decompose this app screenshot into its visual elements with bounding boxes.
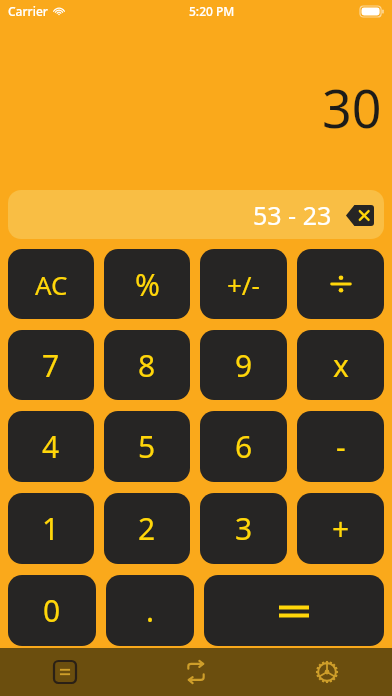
- button[interactable]: 3: [200, 493, 287, 564]
- staticText: 3: [235, 508, 253, 549]
- staticText: 4: [42, 426, 60, 467]
- staticText: -: [336, 426, 346, 467]
- button[interactable]: 0: [8, 575, 96, 646]
- staticText: 6: [235, 426, 253, 467]
- staticText: %: [135, 264, 160, 305]
- button[interactable]: .: [106, 575, 194, 646]
- staticText: 1: [42, 508, 60, 549]
- staticText: 53 - 23: [253, 198, 332, 232]
- button[interactable]: 53 - 23: [8, 190, 384, 239]
- button[interactable]: Memo: [0, 648, 130, 696]
- staticText: 5: [138, 426, 156, 467]
- staticText: 9: [235, 345, 253, 386]
- staticText: 7: [42, 345, 60, 386]
- button[interactable]: 4: [8, 411, 94, 482]
- staticText: 30: [322, 72, 382, 143]
- button[interactable]: 1: [8, 493, 94, 564]
- button[interactable]: Convert: [130, 648, 261, 696]
- staticText: 8: [138, 345, 156, 386]
- button[interactable]: x: [297, 330, 384, 400]
- button[interactable]: -: [297, 411, 384, 482]
- button[interactable]: [297, 249, 384, 319]
- staticText: 2: [138, 508, 156, 549]
- button[interactable]: [204, 575, 384, 646]
- staticText: +/-: [227, 267, 260, 302]
- button[interactable]: +: [297, 493, 384, 564]
- button[interactable]: 9: [200, 330, 287, 400]
- staticText: Carrier: [8, 3, 48, 19]
- button[interactable]: 2: [104, 493, 190, 564]
- staticText: 5:20 PM: [189, 3, 235, 19]
- button[interactable]: 7: [8, 330, 94, 400]
- button[interactable]: Backspace: [346, 205, 374, 226]
- staticText: x: [333, 345, 349, 386]
- staticText: .: [146, 590, 155, 631]
- staticText: +: [332, 508, 350, 549]
- button[interactable]: +/-: [200, 249, 287, 319]
- staticText: 0: [43, 590, 61, 631]
- button[interactable]: Settings: [261, 648, 392, 696]
- staticText: AC: [35, 267, 68, 302]
- button[interactable]: 8: [104, 330, 190, 400]
- button[interactable]: 6: [200, 411, 287, 482]
- button[interactable]: 5: [104, 411, 190, 482]
- button[interactable]: %: [104, 249, 190, 319]
- button[interactable]: AC: [8, 249, 94, 319]
